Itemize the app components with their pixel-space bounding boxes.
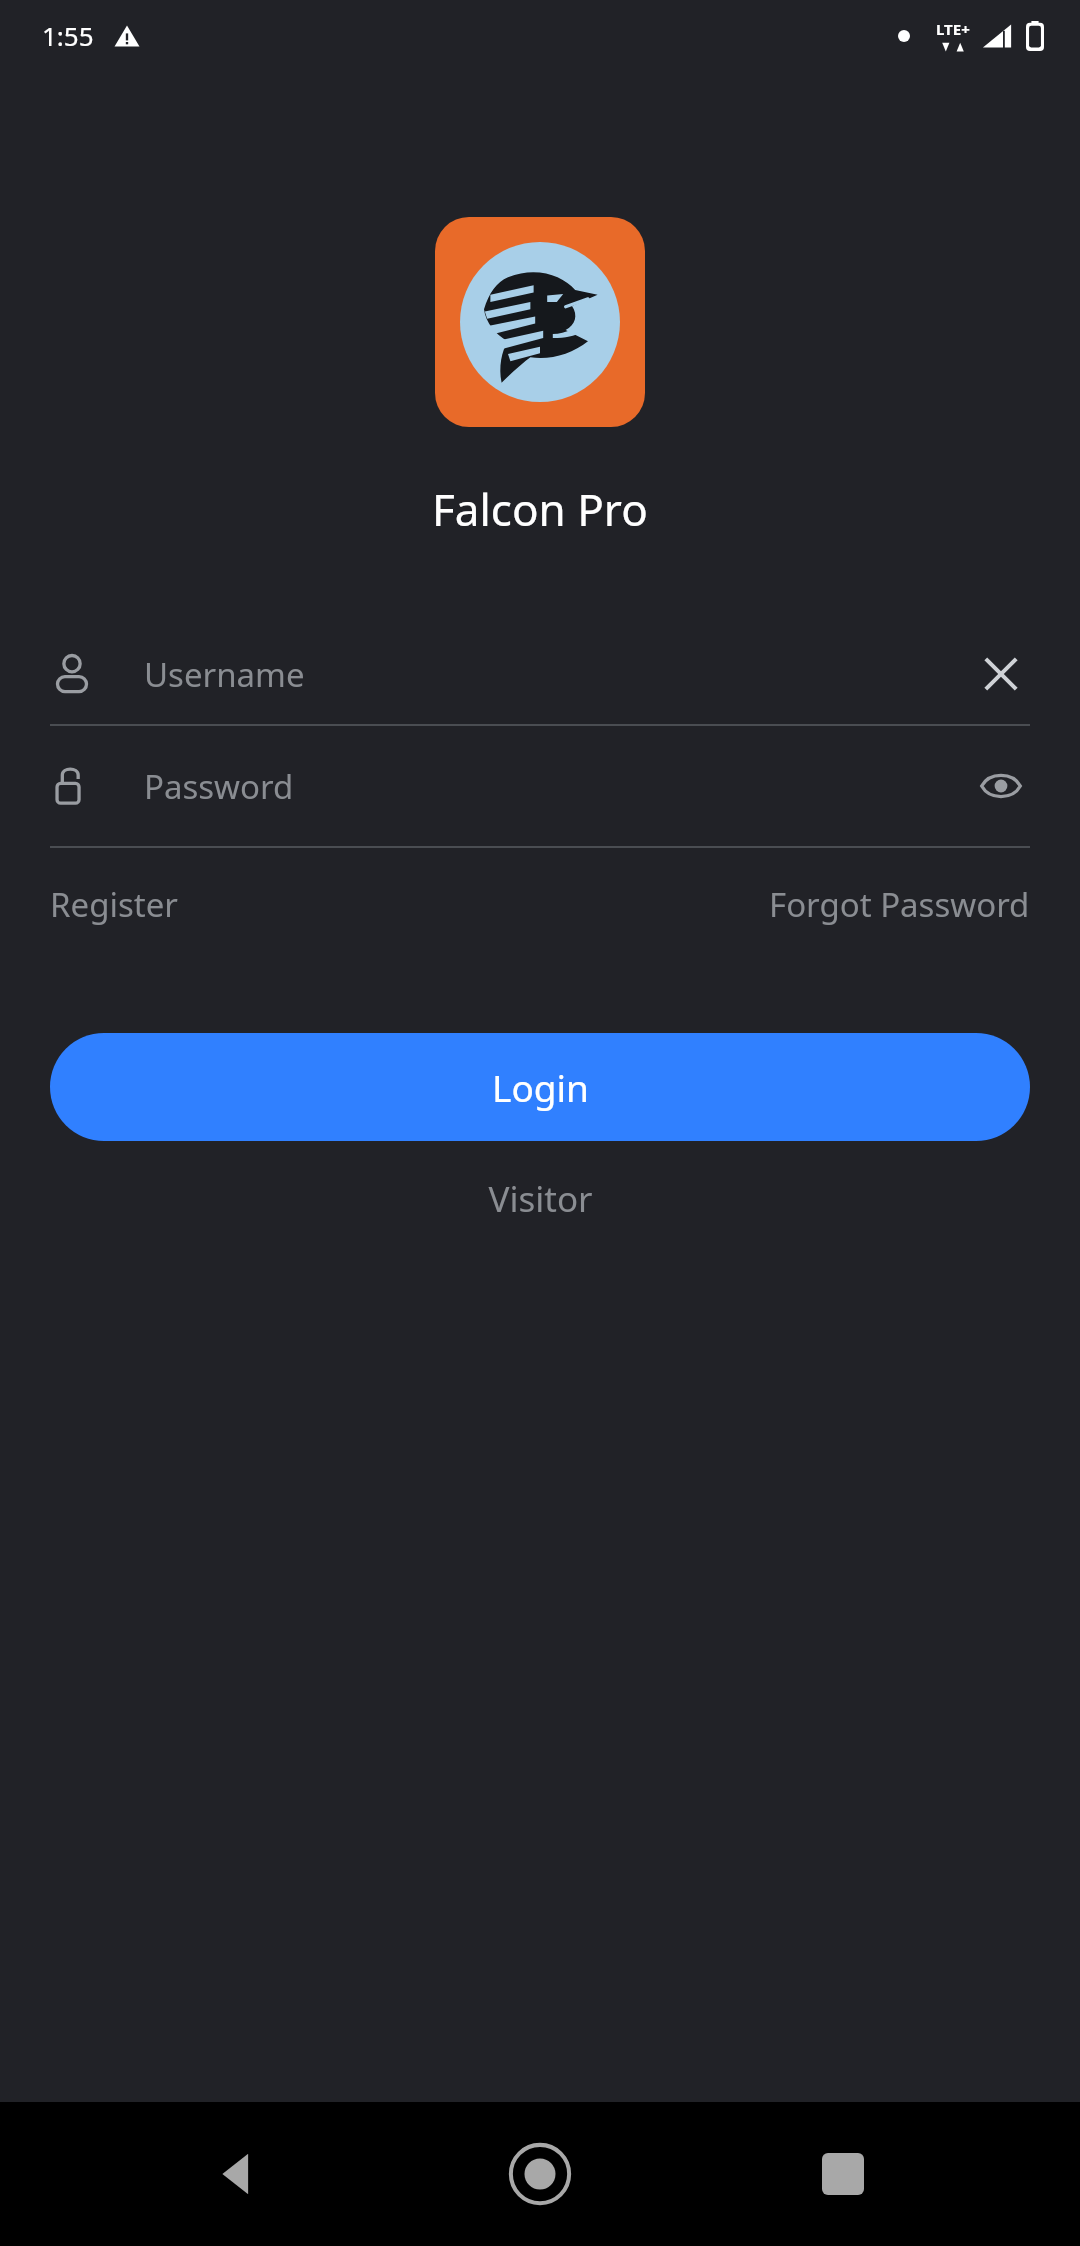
staticText: 1:55: [42, 18, 94, 53]
staticText: Username: [144, 652, 305, 697]
button[interactable]: Username: [50, 624, 1030, 724]
button[interactable]: Password: [50, 726, 1030, 846]
staticText: Falcon Pro: [432, 479, 648, 539]
staticText: LTE+: [936, 19, 970, 39]
button[interactable]: Login: [50, 1033, 1030, 1141]
staticText: Register: [50, 882, 178, 927]
staticText: Login: [492, 1062, 589, 1112]
button[interactable]: Home: [475, 2109, 605, 2239]
button[interactable]: Register: [50, 882, 178, 927]
staticText: Forgot Password: [769, 882, 1030, 927]
button[interactable]: Back: [173, 2109, 303, 2239]
staticText: Password: [144, 764, 294, 809]
button[interactable]: Clear username: [972, 645, 1030, 703]
button[interactable]: Recent apps: [778, 2109, 908, 2239]
button[interactable]: [435, 217, 645, 427]
staticText: Visitor: [488, 1175, 593, 1223]
button[interactable]: Forgot Password: [769, 882, 1030, 927]
button[interactable]: Visitor: [50, 1175, 1030, 1223]
button[interactable]: Show password: [972, 757, 1030, 815]
